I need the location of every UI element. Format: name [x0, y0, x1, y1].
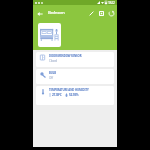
staticText: BULB	[49, 71, 56, 75]
staticText: DOOR/WINDOW SENSOR	[49, 54, 82, 58]
button[interactable]: BULB	[36, 69, 114, 84]
staticText: TEMPERATURE AND HUMIDITY	[49, 88, 89, 92]
button[interactable]: DOOR/WINDOW SENSOR	[36, 52, 114, 67]
staticText: Off	[49, 76, 53, 80]
button[interactable]: TEMPERATURE AND HUMIDITY	[36, 86, 114, 105]
staticText: Bedroom	[48, 10, 65, 16]
button[interactable]	[38, 23, 61, 47]
staticText: 52.93%	[69, 93, 79, 97]
button[interactable]: Edit	[87, 9, 96, 18]
button[interactable]: Stop	[97, 9, 106, 18]
button[interactable]: Back	[34, 8, 45, 19]
staticText: 27.38°C	[52, 93, 62, 97]
staticText: 18:22	[108, 1, 115, 5]
staticText: Closed	[49, 59, 57, 63]
button[interactable]: Refresh	[107, 9, 116, 18]
